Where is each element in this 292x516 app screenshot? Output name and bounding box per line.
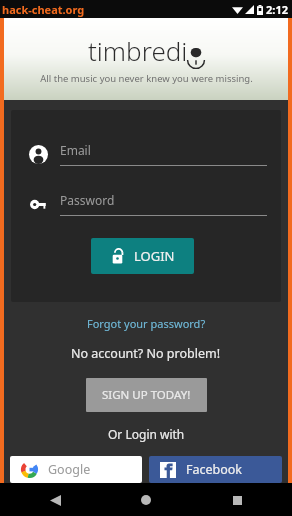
staticText: Forgot your password?	[87, 316, 206, 331]
button[interactable]: Home	[131, 485, 161, 515]
button[interactable]: Forgot your password?	[81, 314, 212, 333]
button[interactable]: Facebook	[149, 456, 282, 483]
staticText: Password	[60, 192, 115, 208]
button[interactable]: LOGIN	[91, 238, 194, 274]
staticText: No account? No problem!	[71, 345, 221, 362]
staticText: SIGN UP TODAY!	[102, 387, 191, 403]
button[interactable]: Back	[40, 485, 70, 515]
staticText: Email	[60, 142, 91, 158]
staticText: hack-cheat.org	[2, 2, 85, 17]
staticText: Facebook	[186, 461, 243, 478]
button[interactable]: Google	[10, 456, 142, 483]
button[interactable]: SIGN UP TODAY!	[86, 378, 207, 412]
staticText: Google	[48, 461, 91, 478]
staticText: All the music you never knew you were mi…	[40, 72, 253, 85]
staticText: 2:12	[266, 2, 288, 17]
staticText: Or Login with	[108, 426, 185, 442]
button[interactable]: Recent apps	[222, 485, 252, 515]
staticText: timbredi	[88, 33, 188, 68]
staticText: LOGIN	[134, 247, 175, 265]
